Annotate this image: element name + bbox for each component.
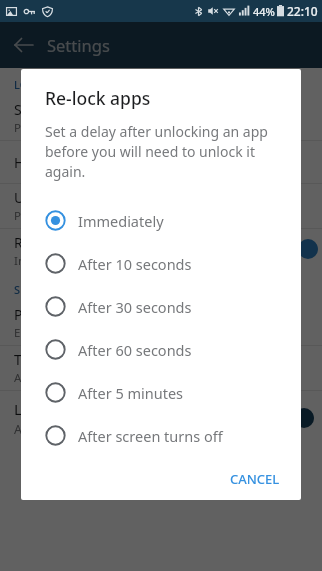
staticText: Lock new apps (14, 399, 118, 419)
button[interactable]: After 10 seconds (21, 242, 301, 285)
staticText: LOCKING (14, 77, 63, 92)
staticText: Prevent uninstall (14, 305, 125, 324)
staticText: After 60 seconds (78, 340, 192, 360)
staticText: Trusted devices (14, 350, 116, 369)
button[interactable]: Screen lock type (0, 96, 322, 140)
staticText: Screen lock type (14, 100, 121, 119)
staticText: Re-lock apps (45, 86, 151, 110)
staticText: After 30 seconds (78, 297, 192, 317)
staticText: How to lock (14, 153, 91, 172)
button[interactable]: Prevent uninstall (0, 301, 322, 345)
staticText: Password (14, 208, 67, 224)
button[interactable]: Trusted devices (0, 346, 322, 390)
button[interactable]: Back (8, 29, 40, 61)
staticText: 44% (253, 4, 275, 19)
staticText: Settings (47, 34, 110, 56)
staticText: Password (14, 120, 67, 136)
staticText: Unlock method (14, 188, 115, 207)
button[interactable]: CANCEL (221, 463, 289, 495)
staticText: After 10 seconds (78, 254, 192, 274)
staticText: Ask after installation (14, 421, 135, 438)
staticText: SECURITY (14, 282, 65, 297)
button[interactable]: Unlock method (0, 184, 322, 228)
staticText: Immediately (14, 253, 82, 269)
button[interactable]: After 5 minutes (21, 371, 301, 414)
button[interactable]: Re-lock apps (0, 229, 322, 273)
button[interactable]: After 30 seconds (21, 285, 301, 328)
staticText: After screen turns off (78, 426, 223, 446)
staticText: 22:10 (287, 3, 318, 19)
button[interactable]: How to lock (0, 141, 322, 183)
staticText: Enabled (14, 325, 58, 341)
button[interactable]: Immediately (21, 199, 301, 242)
button[interactable]: After 60 seconds (21, 328, 301, 371)
staticText: After 5 minutes (78, 383, 184, 403)
staticText: Set a delay after unlocking an app befor… (45, 122, 281, 181)
button[interactable]: Lock new apps (0, 391, 322, 445)
staticText: Re-lock apps (14, 233, 97, 252)
staticText: CANCEL (230, 470, 280, 488)
staticText: Add device (14, 370, 73, 386)
button[interactable]: After screen turns off (21, 414, 301, 457)
staticText: Immediately (78, 211, 164, 231)
